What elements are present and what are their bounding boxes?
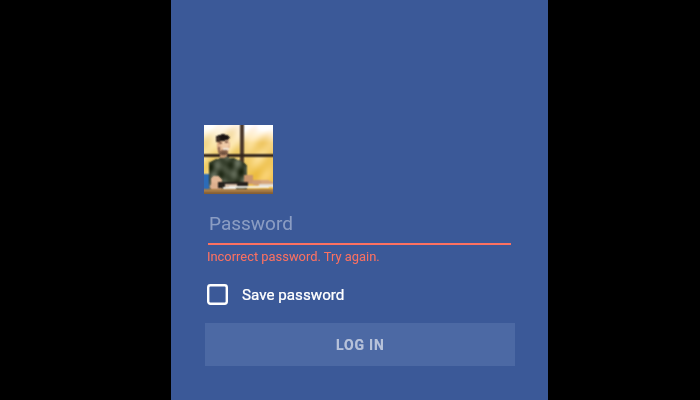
button[interactable]: Password xyxy=(207,208,510,244)
staticText: Incorrect password. Try again. xyxy=(207,249,380,264)
staticText: LOG IN xyxy=(336,337,385,353)
staticText: Save password xyxy=(242,286,345,304)
button[interactable]: Save password xyxy=(205,279,385,310)
staticText: Password xyxy=(209,212,293,234)
button[interactable]: LOG IN xyxy=(205,323,515,366)
